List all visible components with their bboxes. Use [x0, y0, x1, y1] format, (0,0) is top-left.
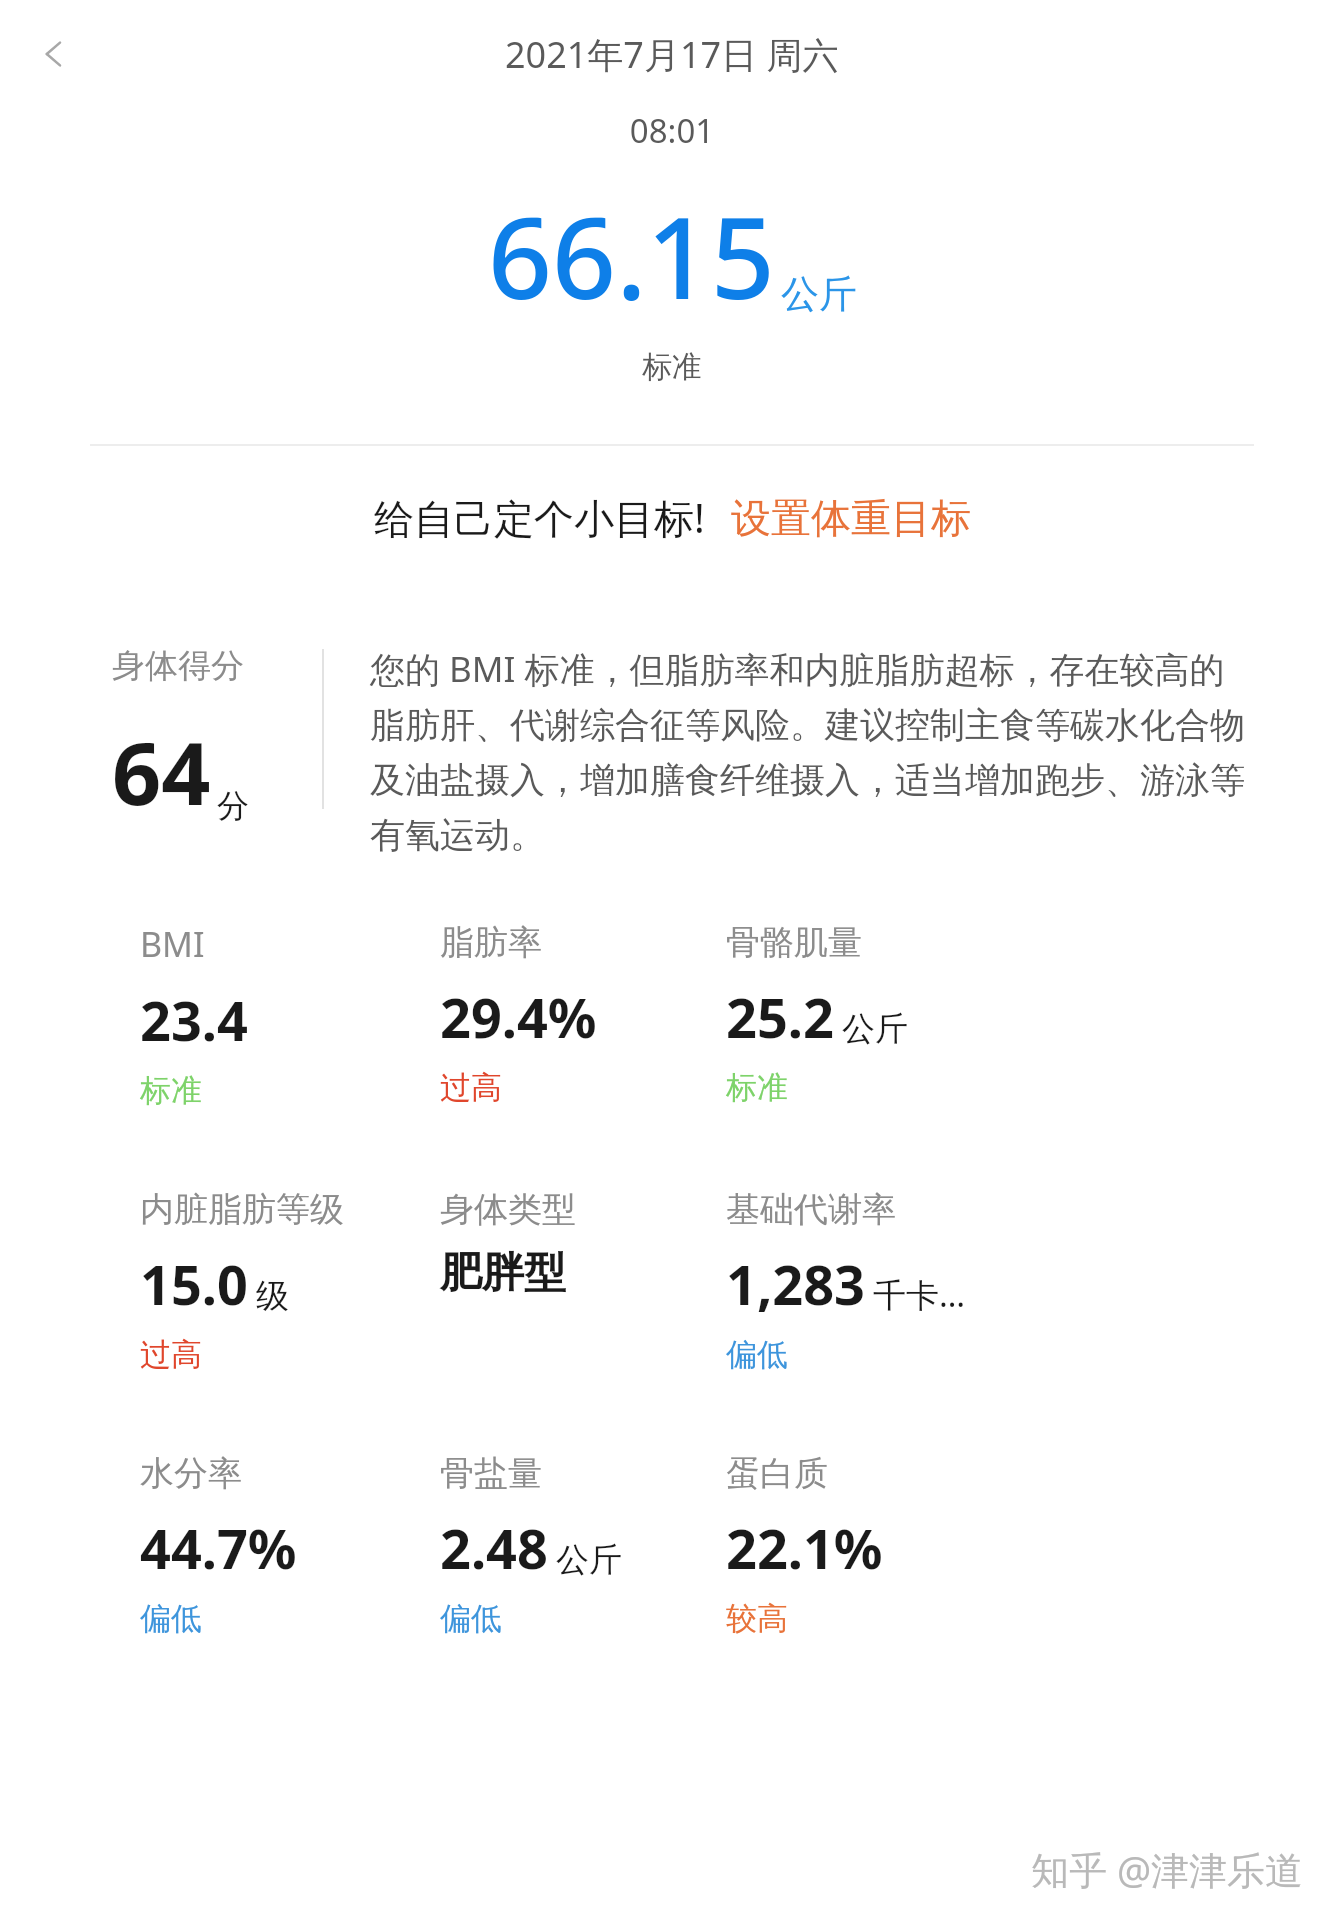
staticText: 骨骼肌量 — [726, 921, 862, 964]
staticText: 内脏脂肪等级 — [140, 1188, 344, 1231]
staticText: 脂肪率 — [440, 921, 542, 964]
staticText: 29.4% — [440, 980, 597, 1054]
button[interactable]: 基础代谢率 — [726, 1188, 1304, 1374]
staticText: 偏低 — [726, 1335, 788, 1374]
button[interactable]: 蛋白质 — [726, 1452, 1304, 1638]
staticText: 44.7% — [140, 1511, 297, 1585]
button[interactable]: Back — [22, 22, 86, 86]
staticText: 分 — [217, 786, 249, 826]
staticText: 肥胖型 — [440, 1247, 566, 1300]
staticText: BMI — [140, 921, 205, 967]
staticText: 偏低 — [440, 1599, 502, 1638]
staticText: 66.15 — [488, 179, 775, 332]
staticText: 级 — [256, 1275, 289, 1317]
staticText: 23.4 — [140, 983, 248, 1057]
staticText: 较高 — [726, 1599, 788, 1638]
staticText: 给自己定个小目标! — [374, 490, 705, 545]
staticText: 设置体重目标 — [731, 493, 971, 543]
staticText: 08:01 — [0, 108, 1344, 153]
button[interactable]: 脂肪率 — [440, 921, 726, 1107]
button[interactable]: 骨骼肌量 — [726, 921, 1304, 1107]
staticText: 知乎 @津津乐道 — [1031, 1843, 1304, 1895]
staticText: 过高 — [140, 1335, 202, 1374]
staticText: 1,283 — [726, 1247, 865, 1321]
staticText: 64 — [112, 713, 211, 830]
staticText: 过高 — [440, 1068, 502, 1107]
staticText: 千卡… — [873, 1272, 966, 1317]
button[interactable]: 水分率 — [140, 1452, 440, 1638]
staticText: 公斤 — [781, 270, 857, 318]
staticText: 标准 — [726, 1068, 788, 1107]
staticText: 25.2 — [726, 980, 834, 1054]
button[interactable]: 身体类型 — [440, 1188, 726, 1314]
staticText: 蛋白质 — [726, 1452, 828, 1495]
staticText: 2021年7月17日 周六 — [505, 30, 839, 79]
staticText: 标准 — [0, 348, 1344, 386]
staticText: 基础代谢率 — [726, 1188, 896, 1231]
staticText: 您的 BMI 标准，但脂肪率和内脏脂肪超标，存在较高的脂肪肝、代谢综合征等风险。… — [370, 645, 1248, 857]
button[interactable]: 设置体重目标 — [731, 493, 971, 543]
button[interactable]: BMI — [140, 921, 440, 1110]
staticText: 15.0 — [140, 1247, 248, 1321]
staticText: 22.1% — [726, 1511, 883, 1585]
staticText: 公斤 — [842, 1008, 908, 1050]
staticText: 公斤 — [556, 1539, 622, 1581]
staticText: 身体类型 — [440, 1188, 576, 1231]
staticText: 标准 — [140, 1071, 202, 1110]
staticText: 2.48 — [440, 1511, 548, 1585]
button[interactable]: 骨盐量 — [440, 1452, 726, 1638]
button[interactable]: 内脏脂肪等级 — [140, 1188, 440, 1374]
staticText: 身体得分 — [112, 645, 244, 687]
staticText: 偏低 — [140, 1599, 202, 1638]
staticText: 水分率 — [140, 1452, 242, 1495]
staticText: 骨盐量 — [440, 1452, 542, 1495]
